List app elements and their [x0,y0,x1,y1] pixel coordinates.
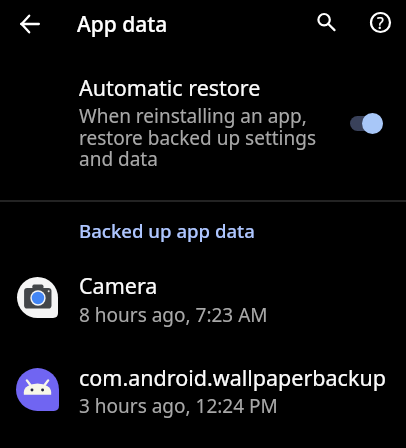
button[interactable]: Search [303,0,347,44]
staticText: ? [377,12,384,33]
button[interactable]: Automatic restore [0,56,406,200]
staticText: 3 hours ago, 12:24 PM [79,393,278,419]
staticText: Backed up app data [79,218,255,243]
staticText: Camera [79,271,158,300]
button[interactable]: Help and feedback [358,0,402,44]
staticText: App data [77,10,168,39]
staticText: When reinstalling an app, restore backed… [79,103,317,171]
button[interactable]: Camera [0,258,406,334]
staticText: com.android.wallpaperbackup [79,363,386,392]
staticText: 8 hours ago, 7:23 AM [79,302,268,328]
button[interactable]: com.android.wallpaperbackup [0,352,406,428]
staticText: Automatic restore [79,73,261,102]
button[interactable]: Navigate up [8,2,52,46]
